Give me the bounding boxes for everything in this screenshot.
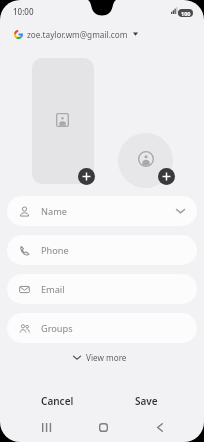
button[interactable]: Cancel [0,389,102,413]
button[interactable]: zoe.taylor.wm@gmail.com [0,25,204,43]
button[interactable]: Add photo [32,58,94,184]
staticText: zoe.taylor.wm@gmail.com [27,29,128,40]
staticText: View more [86,352,127,363]
staticText: 100 [181,10,191,17]
staticText: Phone [41,244,69,257]
staticText: Email [41,283,65,296]
button[interactable]: Add profile picture [118,133,173,188]
button[interactable]: Add [78,168,95,185]
staticText: 10:00 [13,6,34,17]
staticText: Cancel [41,394,74,408]
button[interactable]: Email [7,274,197,304]
button[interactable]: Name [7,196,197,226]
button[interactable]: Phone [7,235,197,265]
button[interactable]: Add [158,168,175,185]
button[interactable]: Back [146,416,174,438]
button[interactable]: Save [102,389,204,413]
button[interactable]: Home [89,416,117,438]
button[interactable]: View more [68,349,132,366]
button[interactable]: Recents [32,416,60,438]
staticText: Groups [41,322,73,335]
staticText: Name [41,205,67,218]
staticText: Save [135,394,158,408]
button[interactable]: Groups [7,313,197,343]
